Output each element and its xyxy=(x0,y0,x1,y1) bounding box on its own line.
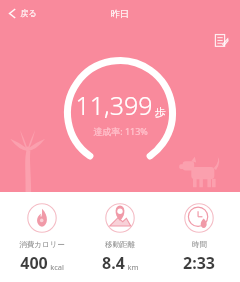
staticText: 11,399 xyxy=(75,88,153,122)
button[interactable]: メモ xyxy=(210,30,232,52)
button[interactable]: 戻る xyxy=(0,4,45,22)
button[interactable]: 時間 xyxy=(162,192,236,274)
staticText: 戻る xyxy=(20,8,37,18)
staticText: 2:33 xyxy=(183,252,215,274)
staticText: 消費カロリー xyxy=(19,240,65,249)
staticText: 達成率: 113% xyxy=(93,125,148,137)
button[interactable]: 消費カロリー xyxy=(5,192,79,274)
staticText: 時間 xyxy=(192,240,207,249)
staticText: 400 xyxy=(20,252,48,274)
staticText: 移動距離 xyxy=(105,240,135,249)
staticText: km xyxy=(127,262,139,272)
staticText: kcal xyxy=(50,262,64,272)
staticText: 歩 xyxy=(155,105,166,119)
button[interactable]: 移動距離 xyxy=(83,192,157,274)
staticText: 昨日 xyxy=(111,8,129,19)
staticText: 8.4 xyxy=(102,252,125,274)
